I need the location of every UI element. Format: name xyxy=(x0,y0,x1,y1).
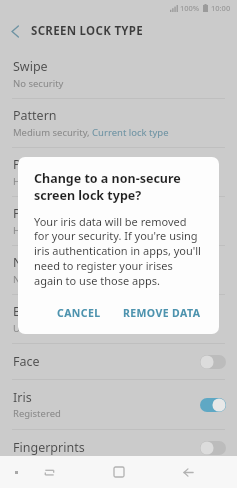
staticText: SCREEN LOCK TYPE xyxy=(31,23,144,39)
staticText: Medium security, Current lock type xyxy=(13,126,169,139)
staticText: 100% xyxy=(180,3,200,13)
button[interactable]: Back xyxy=(175,459,201,485)
staticText: PIN xyxy=(13,156,35,173)
button[interactable]: Biometrics xyxy=(0,295,237,343)
staticText: Pattern xyxy=(13,107,57,124)
button[interactable]: None xyxy=(0,246,237,294)
button[interactable]: PIN xyxy=(0,148,237,196)
staticText: 10:00 xyxy=(211,3,231,13)
button[interactable]: Fingerprints xyxy=(0,430,237,465)
staticText: CANCEL xyxy=(57,306,101,320)
button[interactable]: CANCEL xyxy=(49,301,109,325)
staticText: No security xyxy=(13,273,64,286)
button[interactable]: Iris switch xyxy=(200,398,226,412)
staticText: Your iris data will be removed for your … xyxy=(34,214,203,289)
button[interactable]: Swipe xyxy=(0,50,237,98)
staticText: Face xyxy=(13,353,40,370)
button[interactable]: Pattern xyxy=(0,99,237,147)
staticText: Biometrics xyxy=(13,303,76,320)
staticText: High security xyxy=(13,224,72,237)
staticText: Iris xyxy=(13,389,32,406)
staticText: No security xyxy=(13,77,64,90)
button[interactable]: Face xyxy=(0,344,237,379)
staticText: Password xyxy=(13,205,70,222)
staticText: Change to a non-secure screen lock type? xyxy=(34,170,203,203)
staticText: REMOVE DATA xyxy=(123,306,201,320)
staticText: Swipe xyxy=(13,58,48,75)
button[interactable]: REMOVE DATA xyxy=(115,301,209,325)
button[interactable]: Password xyxy=(0,197,237,245)
button[interactable]: Recent apps xyxy=(36,459,62,485)
staticText: None xyxy=(13,254,45,271)
staticText: Use to unlock xyxy=(13,322,74,335)
button[interactable]: Home xyxy=(106,459,132,485)
button[interactable]: Fingerprints switch xyxy=(200,441,226,455)
button[interactable]: Navigate up xyxy=(0,15,31,47)
staticText: High security xyxy=(13,175,72,188)
staticText: Fingerprints xyxy=(13,439,85,456)
button[interactable]: Iris xyxy=(0,380,237,429)
button[interactable]: Face switch xyxy=(200,355,226,369)
staticText: Registered xyxy=(13,407,61,420)
